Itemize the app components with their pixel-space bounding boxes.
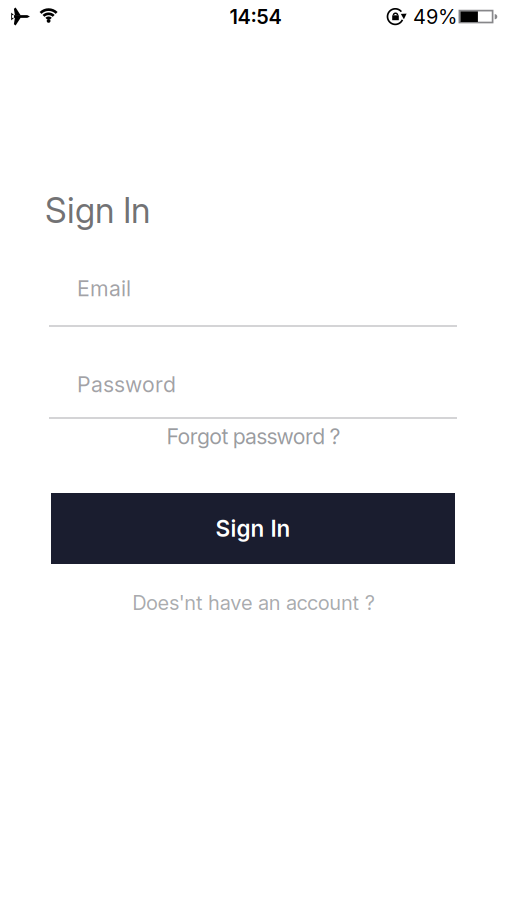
staticText: 14:54	[229, 5, 281, 29]
staticText: Forgot password ?	[166, 424, 341, 449]
staticText: Email	[77, 276, 131, 301]
staticText: Sign In	[45, 190, 150, 231]
button[interactable]: Forgot password ?	[166, 424, 341, 449]
staticText: 49%	[413, 5, 457, 29]
staticText: Password	[77, 372, 176, 397]
staticText: Sign In	[215, 515, 290, 542]
staticText: Does'nt have an account ?	[132, 591, 375, 615]
button[interactable]: Password	[49, 372, 457, 419]
button[interactable]: Email	[49, 276, 457, 327]
button[interactable]: Does'nt have an account ?	[132, 591, 375, 615]
button[interactable]: Sign In	[51, 493, 455, 564]
